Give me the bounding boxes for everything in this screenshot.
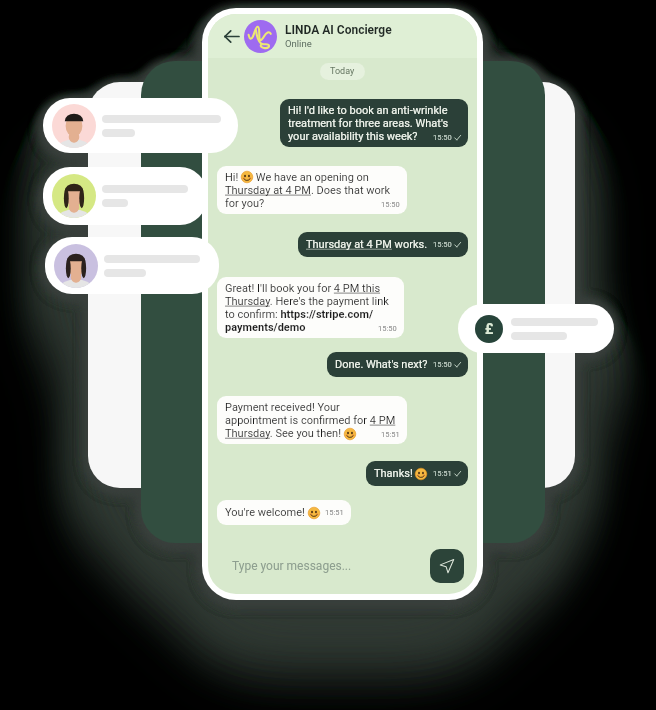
staticText: 15:50 xyxy=(378,324,397,333)
staticText: 15:50 xyxy=(433,133,452,142)
button[interactable]: Thursday at 4 PM works. xyxy=(298,232,468,257)
button[interactable]: £ xyxy=(458,304,614,353)
button[interactable]: You're welcome! 😊 xyxy=(217,500,351,525)
staticText: Great! I'll book you for 4 PM this Thurs… xyxy=(225,282,397,334)
staticText: Hi! I'd like to book an anti-wrinkle tre… xyxy=(288,104,461,143)
staticText: Thursday at 4 PM works. xyxy=(306,238,428,251)
staticText: Today xyxy=(330,66,355,77)
button[interactable]: Send xyxy=(430,549,464,583)
button[interactable]: Great! I'll book you for 4 PM this Thurs… xyxy=(217,277,404,338)
button[interactable] xyxy=(43,98,238,153)
staticText: 15:50 xyxy=(381,200,400,209)
button[interactable] xyxy=(45,237,219,294)
button[interactable]: Hi! I'd like to book an anti-wrinkle tre… xyxy=(280,99,468,147)
staticText: £ xyxy=(485,321,494,337)
staticText: Online xyxy=(285,38,312,49)
staticText: Type your messages... xyxy=(232,559,352,573)
staticText: Thanks! 😊 xyxy=(374,467,428,480)
staticText: 15:51 xyxy=(325,508,344,517)
staticText: LINDA AI Concierge xyxy=(285,23,392,37)
staticText: Done. What's next? xyxy=(335,358,428,371)
staticText: 15:50 xyxy=(433,360,452,369)
staticText: 15:51 xyxy=(433,469,452,478)
button[interactable]: Done. What's next? xyxy=(327,352,468,377)
staticText: Hi! 😊 We have an opening on Thursday at … xyxy=(225,171,400,210)
staticText: 15:50 xyxy=(433,240,452,249)
staticText: Payment received! Your appointment is co… xyxy=(225,401,400,440)
button[interactable]: Back xyxy=(218,23,244,49)
button[interactable]: Thanks! 😊 xyxy=(366,461,468,486)
button[interactable]: Hi! 😊 We have an opening on Thursday at … xyxy=(217,166,407,214)
staticText: You're welcome! 😊 xyxy=(225,506,320,519)
button[interactable] xyxy=(43,167,207,225)
button[interactable]: Payment received! Your appointment is co… xyxy=(217,396,407,444)
staticText: 15:51 xyxy=(381,430,400,439)
